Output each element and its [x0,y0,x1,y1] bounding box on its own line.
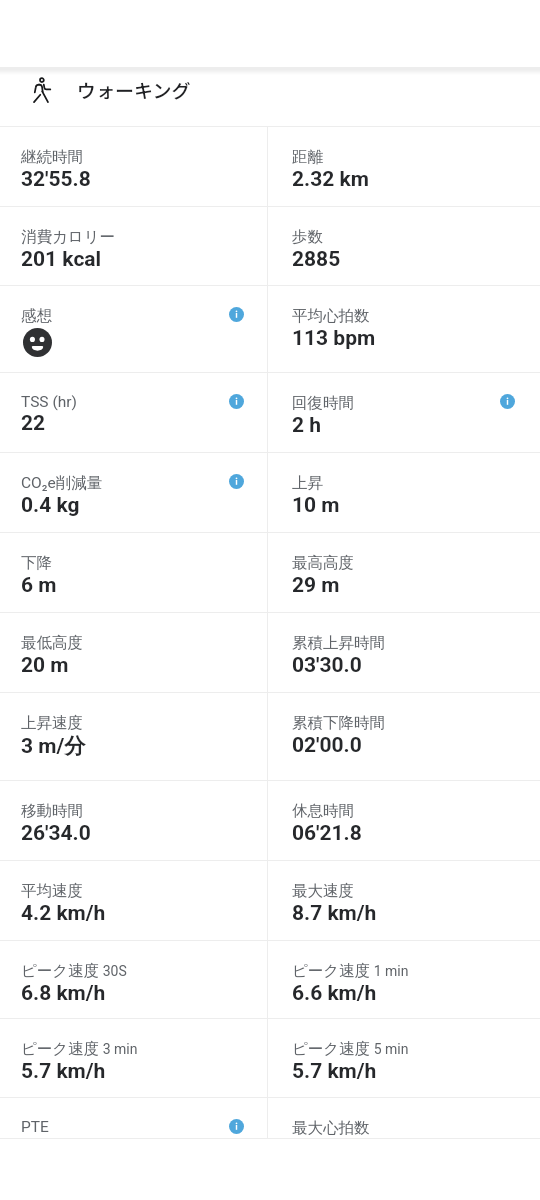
staticText: 感想 [21,306,52,326]
button[interactable]: 最大速度 [268,861,540,940]
other: More information [229,474,244,489]
other: More information [229,307,244,322]
button[interactable]: 上昇速度 [0,693,267,780]
staticText: PTE [21,1118,49,1136]
button[interactable]: 最大心拍数 [268,1098,540,1138]
staticText: ピーク速度 5 min [292,1039,409,1059]
staticText: 26'34.0 [21,821,91,846]
button[interactable]: 最低高度 [0,613,267,692]
staticText: 8.7 km/h [292,901,377,926]
button[interactable]: 上昇 [268,453,540,532]
staticText: 最大速度 [292,881,354,901]
staticText: 201 kcal [21,247,102,272]
button[interactable]: 回復時間 [268,373,540,452]
button[interactable]: TSS (hr) [0,373,267,452]
staticText: 最大心拍数 [292,1118,370,1138]
button[interactable]: ウォーキング [0,69,540,126]
button[interactable]: 継続時間 [0,127,267,206]
staticText: 03'30.0 [292,653,362,678]
button[interactable]: 距離 [268,127,540,206]
button[interactable]: CO₂e削減量 [0,453,267,532]
staticText: 継続時間 [21,147,83,167]
staticText: ピーク速度 30S [21,961,127,981]
button[interactable]: 最高高度 [268,533,540,612]
staticText: 最高高度 [292,553,354,573]
button[interactable]: 休息時間 [268,781,540,860]
staticText: 3 m/分 [21,733,86,759]
button[interactable]: PTE [0,1098,267,1138]
staticText: 6 m [21,573,57,598]
staticText: 上昇速度 [21,713,83,733]
staticText: 32'55.8 [21,167,91,192]
button[interactable]: 累積下降時間 [268,693,540,780]
staticText: 6.6 km/h [292,981,377,1006]
button[interactable]: 消費カロリー [0,207,267,285]
button[interactable]: 平均速度 [0,861,267,940]
staticText: 累積下降時間 [292,713,385,733]
staticText: 20 m [21,653,69,678]
staticText: 5.7 km/h [21,1059,106,1084]
staticText: 歩数 [292,227,323,247]
button[interactable]: 平均心拍数 [268,286,540,372]
staticText: 距離 [292,147,323,167]
button[interactable]: 累積上昇時間 [268,613,540,692]
staticText: TSS (hr) [21,393,77,411]
button[interactable]: 下降 [0,533,267,612]
staticText: 2885 [292,247,341,272]
staticText: ピーク速度 3 min [21,1039,138,1059]
staticText: 平均速度 [21,881,83,901]
staticText: 上昇 [292,473,323,493]
button[interactable]: ピーク速度 3 min [0,1019,267,1097]
staticText: 29 m [292,573,340,598]
staticText: 4.2 km/h [21,901,106,926]
button[interactable]: ピーク速度 5 min [268,1019,540,1097]
staticText: 113 bpm [292,326,376,351]
staticText: 02'00.0 [292,733,362,758]
other: More information [229,394,244,409]
staticText: 6.8 km/h [21,981,106,1006]
staticText: CO₂e削減量 [21,473,103,493]
staticText: 5.7 km/h [292,1059,377,1084]
staticText: 平均心拍数 [292,306,370,326]
button[interactable]: ピーク速度 1 min [268,941,540,1018]
button[interactable]: ピーク速度 30S [0,941,267,1018]
button[interactable]: 歩数 [268,207,540,285]
button[interactable]: 感想 [0,286,267,372]
staticText: 休息時間 [292,801,354,821]
other: More information [500,394,515,409]
staticText: 10 m [292,493,340,518]
staticText: 移動時間 [21,801,83,821]
staticText: 最低高度 [21,633,83,653]
staticText: 0.4 kg [21,493,80,518]
button[interactable]: 移動時間 [0,781,267,860]
staticText: 回復時間 [292,393,354,413]
staticText: ウォーキング [77,76,191,104]
staticText: 2 h [292,413,322,438]
staticText: 下降 [21,553,52,573]
staticText: 消費カロリー [21,227,116,247]
staticText: 累積上昇時間 [292,633,385,653]
staticText: 22 [21,411,46,436]
other: More information [229,1119,244,1134]
staticText: 06'21.8 [292,821,362,846]
staticText: 2.32 km [292,167,369,192]
staticText: ピーク速度 1 min [292,961,409,981]
